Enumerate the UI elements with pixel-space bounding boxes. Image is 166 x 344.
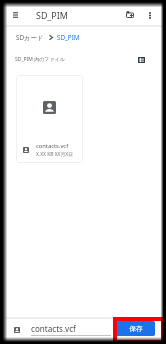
staticText: X.XX KB XX月X日	[36, 151, 74, 158]
button[interactable]: Menu	[8, 8, 22, 22]
button[interactable]: Change view	[136, 54, 147, 65]
staticText: SDカード	[16, 33, 44, 42]
button[interactable]: contacts.vcf	[16, 75, 83, 163]
staticText: contacts.vcf	[36, 142, 69, 150]
staticText: SD_PIM	[57, 33, 80, 42]
button[interactable]: SD_PIM	[57, 33, 80, 42]
staticText: 保存	[129, 325, 143, 333]
button[interactable]: Save	[113, 317, 165, 344]
button[interactable]: New folder	[123, 8, 137, 22]
staticText: contacts.vcf	[31, 323, 76, 334]
staticText: SD_PIM 内のファイル	[15, 56, 65, 63]
button[interactable]: SDカード	[16, 33, 44, 42]
staticText: SD_PIM	[36, 9, 68, 21]
button[interactable]: More options	[144, 9, 156, 21]
